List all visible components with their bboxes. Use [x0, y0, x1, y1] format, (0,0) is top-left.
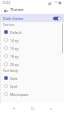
button[interactable]: Navigate up — [2, 7, 9, 14]
staticText: Serif — [10, 84, 18, 89]
staticText: 14 sp — [10, 38, 19, 43]
staticText: Dark theme — [3, 16, 24, 21]
button[interactable]: Back — [9, 104, 18, 113]
staticText: 20 sp — [10, 62, 19, 67]
staticText: 16 sp — [10, 46, 19, 51]
staticText: Monospace — [10, 92, 29, 97]
button[interactable]: 14 sp — [0, 36, 64, 44]
staticText: Font family — [3, 69, 18, 73]
button[interactable]: Dark theme — [0, 14, 64, 22]
button[interactable]: Serif — [0, 82, 64, 90]
button[interactable]: Monospace — [0, 90, 64, 98]
staticText: Theme — [10, 7, 24, 13]
staticText: Default — [10, 30, 22, 35]
button[interactable]: Default — [0, 28, 64, 36]
staticText: 18 sp — [10, 54, 19, 59]
button[interactable]: 16 sp — [0, 44, 64, 52]
staticText: Text size — [3, 23, 15, 27]
button[interactable]: 20 sp — [0, 60, 64, 68]
button[interactable]: Sans — [0, 74, 64, 82]
staticText: 10:24 — [2, 1, 11, 5]
button[interactable]: 18 sp — [0, 52, 64, 60]
button[interactable]: Dark theme toggle — [52, 15, 62, 21]
button[interactable]: Home — [28, 104, 37, 113]
staticText: Sans — [10, 76, 18, 81]
button[interactable]: Recent apps — [46, 104, 55, 113]
